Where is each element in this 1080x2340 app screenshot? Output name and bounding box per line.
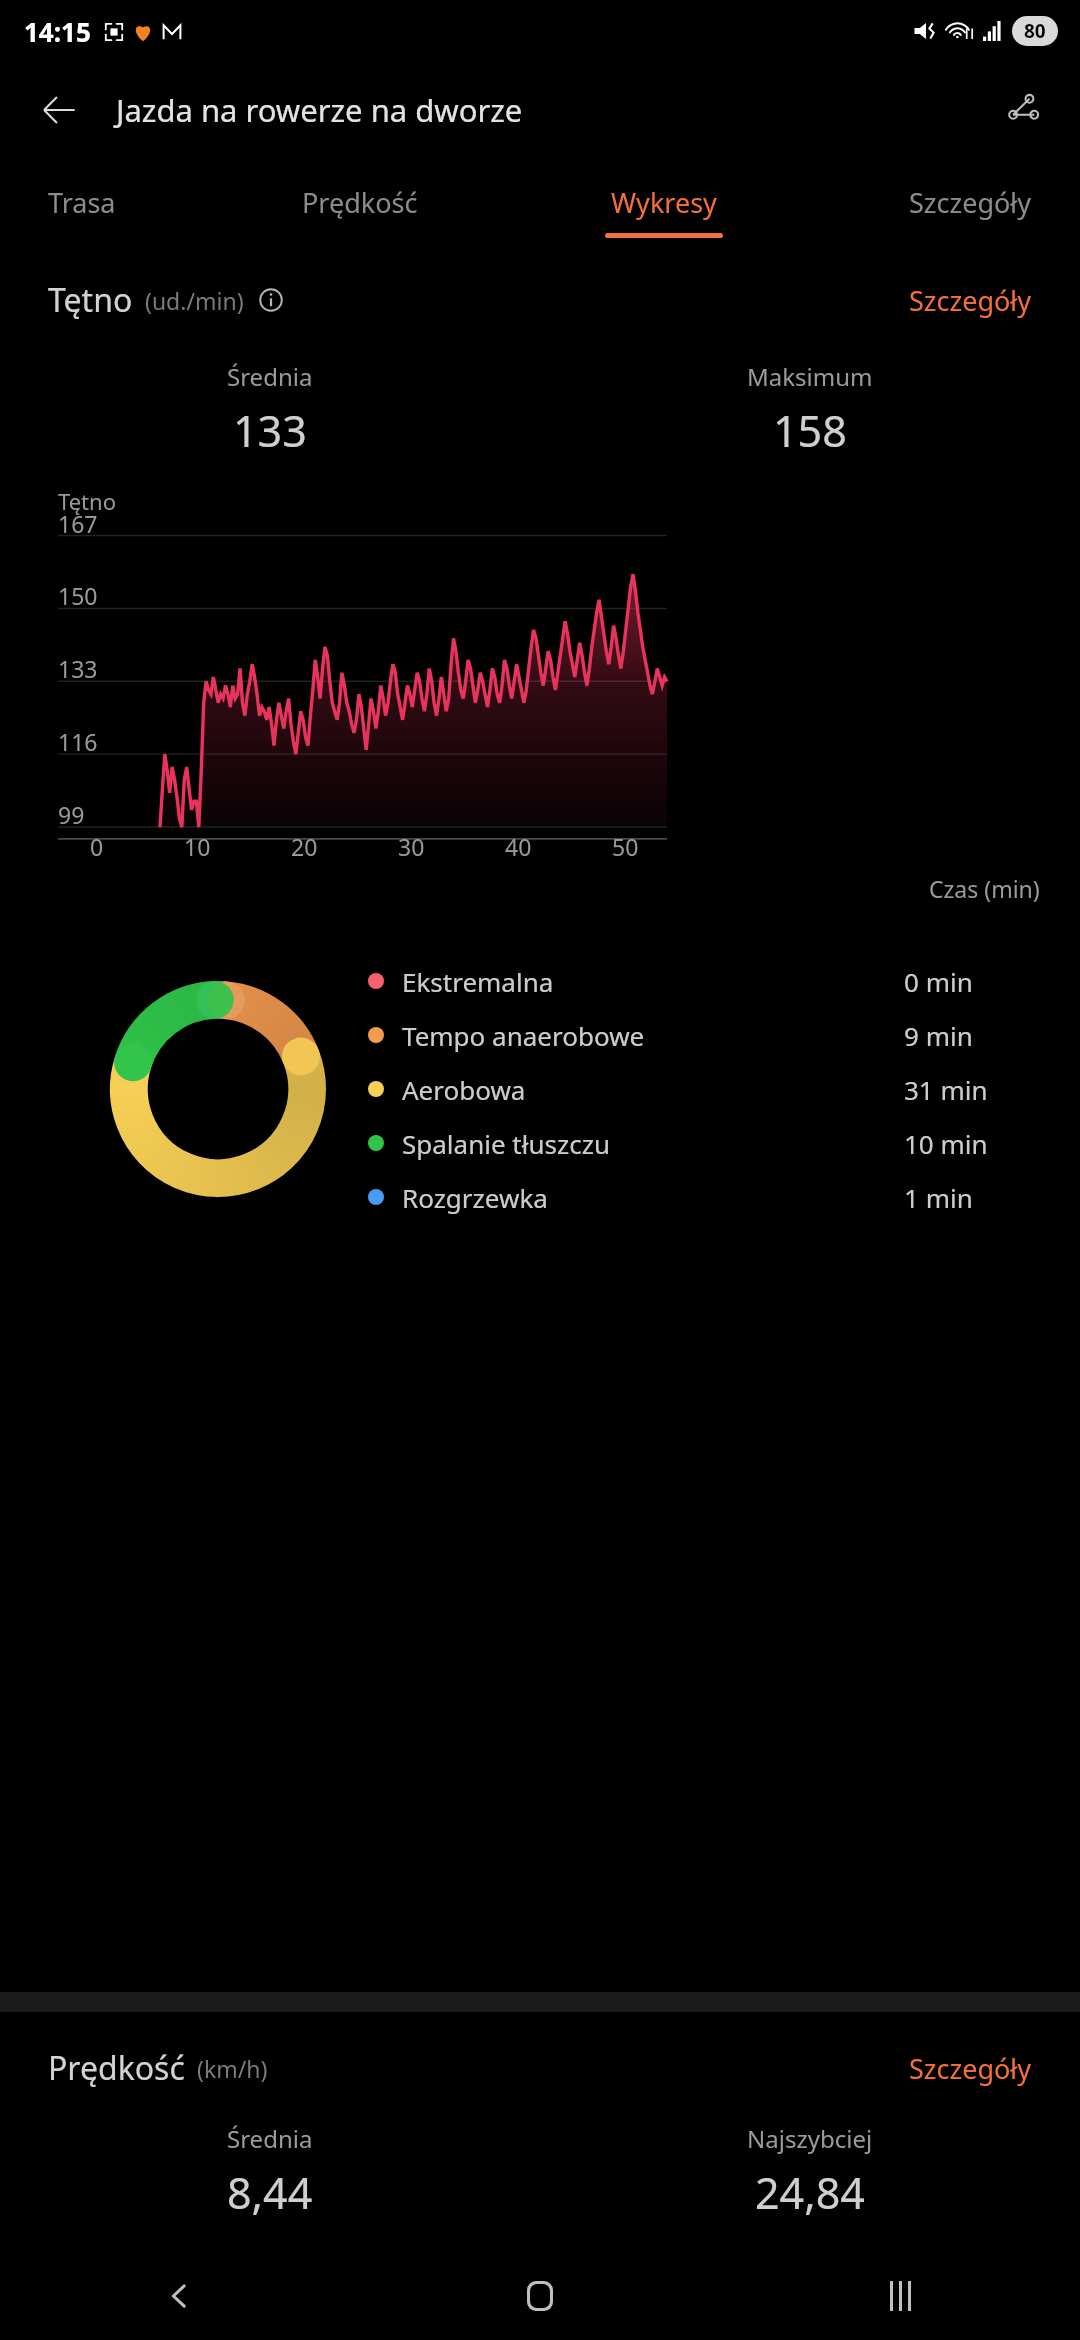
staticText: 20 bbox=[291, 831, 318, 862]
staticText: Średnia bbox=[227, 360, 313, 393]
button[interactable]: Aerobowa bbox=[368, 1062, 1044, 1116]
staticText: Jazda na rowerze na dworze bbox=[116, 89, 523, 131]
staticText: Trasa bbox=[48, 184, 116, 221]
staticText: (km/h) bbox=[197, 2053, 268, 2084]
staticText: 1 min bbox=[904, 1180, 1044, 1215]
staticText: 167 bbox=[58, 508, 98, 539]
staticText: (ud./min) bbox=[145, 285, 244, 316]
staticText: Tętno bbox=[48, 278, 133, 322]
staticText: Rozgrzewka bbox=[402, 1180, 904, 1215]
staticText: Prędkość bbox=[302, 184, 418, 221]
staticText: Szczegóły bbox=[909, 184, 1032, 221]
staticText: 133 bbox=[233, 401, 307, 460]
button[interactable]: Szczegóły bbox=[909, 2050, 1032, 2087]
staticText: 31 min bbox=[904, 1072, 1044, 1107]
staticText: Wykresy bbox=[611, 184, 717, 221]
staticText: Szczegóły bbox=[909, 2050, 1032, 2087]
staticText: 99 bbox=[58, 799, 85, 830]
staticText: 24,84 bbox=[755, 2163, 865, 2222]
button[interactable]: Back bbox=[28, 79, 90, 141]
button[interactable]: Szczegóły bbox=[901, 184, 1040, 233]
staticText: 10 bbox=[184, 831, 211, 862]
button[interactable]: Trasa bbox=[40, 184, 124, 233]
staticText: Prędkość bbox=[48, 2046, 185, 2090]
staticText: Spalanie tłuszczu bbox=[402, 1126, 904, 1161]
button[interactable]: Tempo anaerobowe bbox=[368, 1008, 1044, 1062]
button[interactable]: Info bbox=[256, 285, 286, 315]
staticText: Aerobowa bbox=[402, 1072, 904, 1107]
staticText: 40 bbox=[505, 831, 532, 862]
staticText: 158 bbox=[773, 401, 847, 460]
staticText: Ekstremalna bbox=[402, 964, 904, 999]
staticText: Szczegóły bbox=[909, 282, 1032, 319]
button[interactable]: Share bbox=[994, 80, 1054, 140]
staticText: 133 bbox=[58, 653, 98, 684]
staticText: Tętno bbox=[58, 486, 116, 516]
staticText: 116 bbox=[58, 726, 98, 757]
staticText: 9 min bbox=[904, 1018, 1044, 1053]
button[interactable]: Back bbox=[0, 2252, 360, 2340]
staticText: 8,44 bbox=[227, 2163, 313, 2222]
staticText: 150 bbox=[58, 580, 98, 611]
staticText: 0 min bbox=[904, 964, 1044, 999]
staticText: 30 bbox=[398, 831, 425, 862]
staticText: Tempo anaerobowe bbox=[402, 1018, 904, 1053]
button[interactable]: Szczegóły bbox=[909, 282, 1032, 319]
staticText: Średnia bbox=[227, 2122, 313, 2155]
button[interactable]: Prędkość bbox=[294, 184, 426, 233]
staticText: Maksimum bbox=[747, 360, 873, 393]
staticText: Najszybciej bbox=[747, 2122, 873, 2155]
button[interactable]: Recent apps bbox=[720, 2252, 1080, 2340]
staticText: 10 min bbox=[904, 1126, 1044, 1161]
staticText: 14:15 bbox=[24, 14, 91, 49]
button[interactable]: Wykresy bbox=[597, 184, 731, 238]
staticText: 50 bbox=[612, 831, 639, 862]
staticText: Czas (min) bbox=[929, 873, 1040, 904]
button[interactable]: Home bbox=[360, 2252, 720, 2340]
staticText: 0 bbox=[90, 831, 104, 862]
staticText: 80 bbox=[1024, 18, 1046, 44]
button[interactable]: Rozgrzewka bbox=[368, 1170, 1044, 1224]
button[interactable]: Ekstremalna bbox=[368, 954, 1044, 1008]
button[interactable]: Spalanie tłuszczu bbox=[368, 1116, 1044, 1170]
